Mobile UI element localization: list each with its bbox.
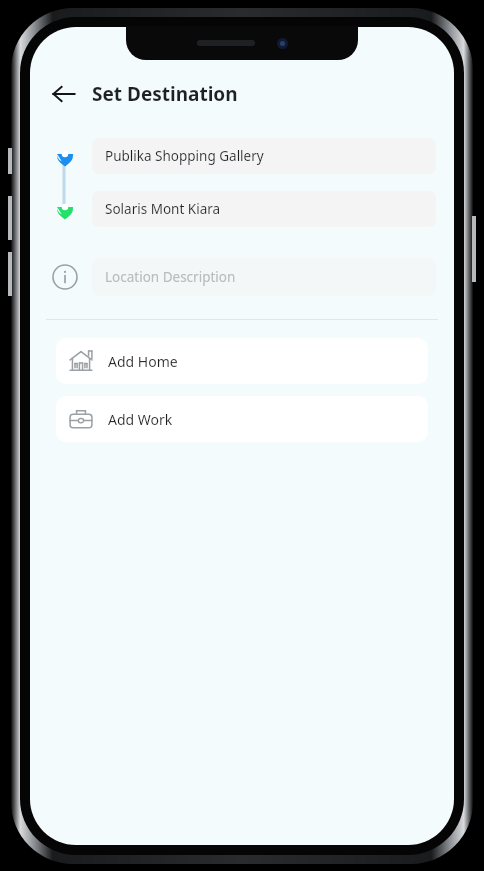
button[interactable]: Back [44,74,84,114]
button[interactable]: Add Work [56,396,428,442]
staticText: Publika Shopping Gallery [105,147,264,165]
staticText: Add Work [108,410,173,429]
staticText: Solaris Mont Kiara [105,200,221,218]
staticText: Location Description [105,268,236,286]
button[interactable]: Publika Shopping Gallery [30,137,454,175]
button[interactable]: Location Description [30,257,454,297]
staticText: Add Home [108,352,178,371]
button[interactable]: Add Home [56,338,428,384]
staticText: Set Destination [92,81,238,107]
button[interactable]: Solaris Mont Kiara [30,190,454,228]
